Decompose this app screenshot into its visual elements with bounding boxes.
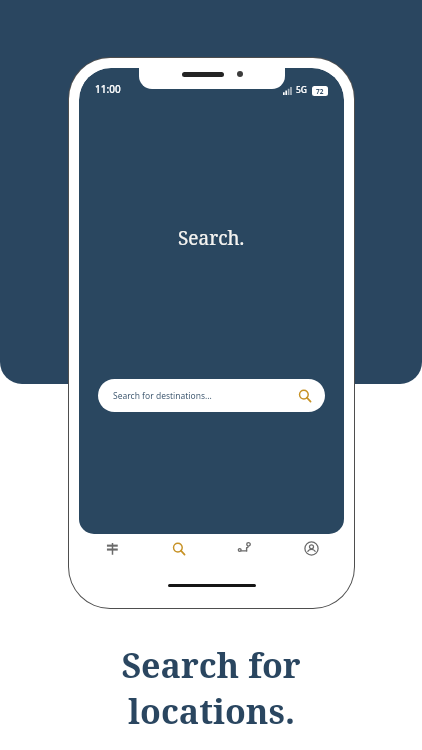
button[interactable]: Search for destinations... [98, 379, 325, 412]
button[interactable]: Profile [278, 534, 344, 563]
staticText: 11:00 [95, 82, 121, 96]
staticText: Search for [121, 642, 301, 688]
staticText: 5G [296, 84, 308, 96]
button[interactable]: Search [146, 534, 212, 563]
staticText: locations. [128, 688, 295, 734]
staticText: Search. [178, 225, 245, 251]
staticText: 72 [316, 87, 324, 96]
button[interactable]: Filters [79, 534, 146, 563]
staticText: Search for destinations... [113, 390, 212, 402]
button[interactable]: Routes [212, 534, 278, 563]
